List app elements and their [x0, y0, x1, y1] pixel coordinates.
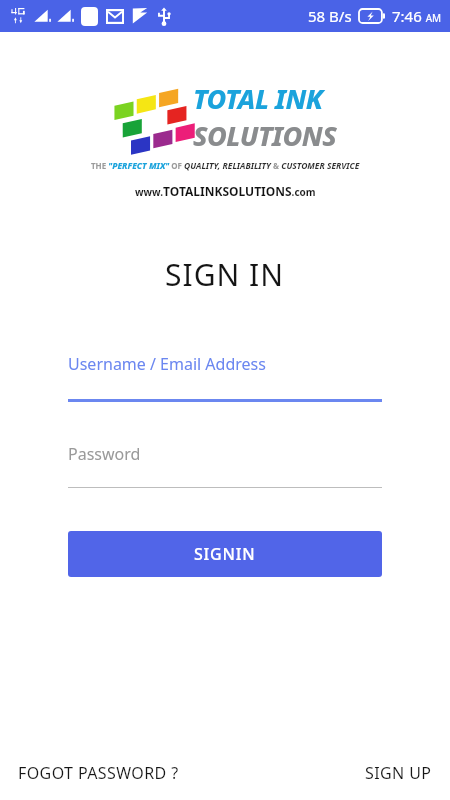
- staticText: FOGOT PASSWORD ?: [18, 762, 179, 784]
- button[interactable]: SIGNIN: [68, 531, 382, 577]
- staticText: SIGNIN: [194, 543, 256, 565]
- staticText: 58 B/s: [308, 6, 352, 26]
- staticText: Password: [68, 443, 141, 465]
- staticText: THE "PERFECT MIX" OF QUALITY, RELIABILIT…: [91, 160, 360, 172]
- button[interactable]: Username / Email Address: [68, 353, 382, 402]
- staticText: www.TOTALINKSOLUTIONS.com: [135, 183, 316, 199]
- button[interactable]: Password: [68, 443, 382, 488]
- button[interactable]: FOGOT PASSWORD ?: [0, 756, 187, 790]
- staticText: Username / Email Address: [68, 353, 266, 375]
- staticText: SIGN IN: [165, 254, 285, 295]
- staticText: 7:46 AM: [392, 6, 442, 26]
- button[interactable]: SIGN UP: [357, 756, 450, 790]
- staticText: SOLUTIONS: [193, 117, 337, 154]
- staticText: SIGN UP: [365, 762, 432, 784]
- staticText: TOTAL INK: [193, 80, 323, 117]
